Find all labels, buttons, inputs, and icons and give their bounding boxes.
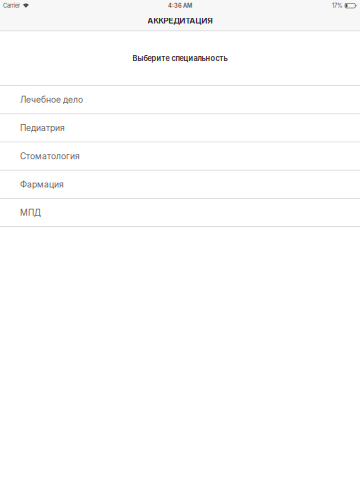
staticText: МПД	[20, 207, 41, 218]
button[interactable]: Педиатрия	[0, 114, 360, 142]
staticText: 4:36 AM	[168, 2, 192, 9]
staticText: Carrier	[3, 2, 20, 9]
staticText: Педиатрия	[20, 123, 65, 133]
button[interactable]: Лечебное дело	[0, 86, 360, 114]
staticText: Лечебное дело	[20, 95, 83, 105]
staticText: АККРЕДИТАЦИЯ	[147, 16, 212, 26]
staticText: 17%	[332, 2, 343, 9]
button[interactable]: МПД	[0, 199, 360, 227]
staticText: Стоматология	[20, 151, 80, 161]
button[interactable]: Стоматология	[0, 142, 360, 171]
button[interactable]: Фармация	[0, 171, 360, 199]
staticText: Выберите специальность	[132, 54, 227, 63]
staticText: Фармация	[20, 179, 64, 189]
